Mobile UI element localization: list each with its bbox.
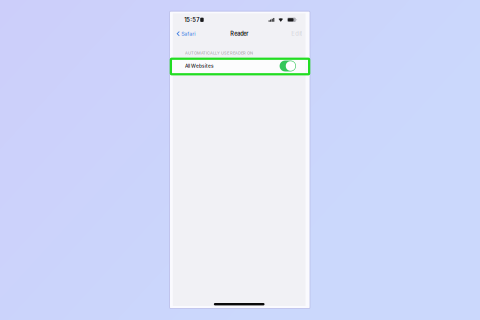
staticText: 15:57 (184, 16, 199, 23)
staticText: Reader (230, 30, 248, 37)
staticText: Safari (181, 30, 195, 37)
staticText: AUTOMATICALLY USE READER ON (185, 50, 253, 55)
button[interactable]: All Websites (173, 58, 306, 74)
staticText: All Websites (185, 63, 214, 69)
staticText: Edit (291, 30, 302, 37)
button[interactable]: Safari (173, 27, 199, 41)
button[interactable]: Edit (286, 27, 306, 41)
